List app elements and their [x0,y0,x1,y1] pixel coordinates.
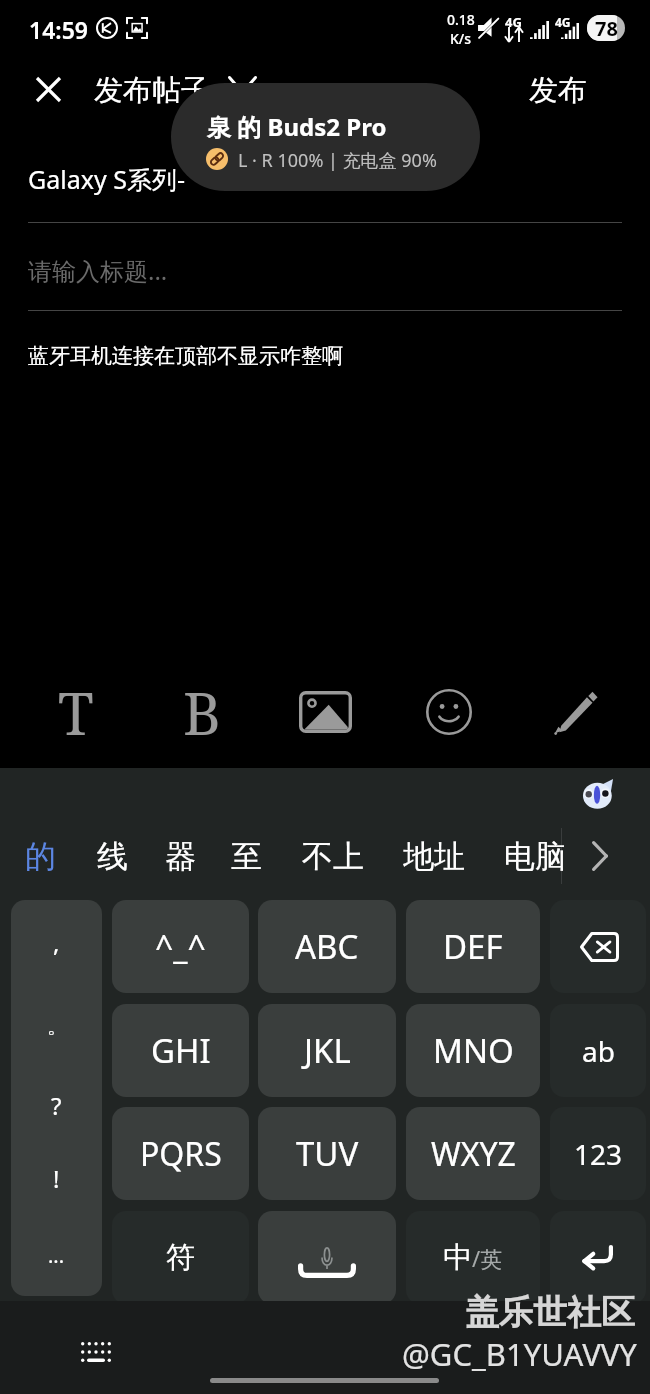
staticText: K/s [450,29,472,48]
button[interactable] [550,1211,646,1304]
staticText: ABC [295,924,359,969]
staticText: ! [53,1162,60,1195]
staticText: 4G [555,14,571,30]
staticText: 发布帖子 [94,72,210,109]
button[interactable] [258,1211,396,1304]
button[interactable] [171,83,480,191]
staticText: ··· [48,1248,65,1275]
staticText: , [53,926,60,959]
button[interactable]: Close [22,63,74,115]
staticText: WXYZ [431,1132,516,1176]
staticText: TUV [296,1131,359,1176]
button[interactable]: Text style [32,668,120,756]
button[interactable]: 器 [146,826,214,886]
button[interactable]: PQRS [112,1107,249,1200]
button[interactable]: ^_^ [112,900,249,993]
staticText: 4G [505,13,522,31]
staticText: 蓝牙耳机连接在顶部不显示咋整啊 [28,343,343,369]
staticText: 123 [574,1135,623,1173]
staticText: 请输入标题... [28,254,168,287]
staticText: MNO [433,1028,514,1073]
staticText: ? [51,1089,62,1122]
staticText: T [58,673,94,752]
staticText: L · R 100% | 充电盒 90% [238,148,437,173]
button[interactable]: 的 [6,826,74,886]
button[interactable]: DEF [406,900,540,993]
button[interactable]: More candidates [572,828,628,884]
button[interactable]: 线 [78,826,146,886]
staticText: 不上 [302,837,364,876]
staticText: ab [582,1032,615,1070]
button[interactable]: Draw [531,668,619,756]
staticText: 0.18 [447,10,475,29]
staticText: 器 [165,837,196,876]
staticText: 符 [166,1239,195,1276]
button[interactable]: Switch input method [74,1330,118,1374]
button[interactable]: TUV [258,1107,396,1200]
staticText: 78 [595,15,618,41]
staticText: 中 [443,1239,472,1276]
staticText: 线 [97,837,128,876]
staticText: JKL [304,1028,351,1073]
button[interactable]: 不上 [299,826,367,886]
staticText: @GC_B1YUAVVY [402,1333,637,1375]
staticText: 至 [231,837,262,876]
staticText: 电脑 [504,837,566,876]
button[interactable]: JKL [258,1004,396,1097]
button[interactable]: Input method logo [578,777,618,817]
button[interactable]: WXYZ [406,1107,540,1200]
staticText: B [183,673,221,752]
button[interactable]: ABC [258,900,396,993]
button[interactable]: GHI [112,1004,249,1097]
button[interactable]: 至 [212,826,280,886]
button[interactable]: 发布 [518,68,598,112]
button[interactable] [550,900,646,993]
button[interactable]: 电脑 [501,826,569,886]
staticText: GHI [151,1028,211,1073]
button[interactable]: Insert image [281,668,369,756]
staticText: 的 [25,837,56,876]
button[interactable]: 123 [550,1107,646,1200]
staticText: DEF [443,924,503,969]
button[interactable]: , [11,900,102,1296]
staticText: 发布 [529,72,587,109]
button[interactable]: Bold [158,668,246,756]
staticText: 14:59 [29,14,88,45]
staticText: 盖乐世社区 [465,1291,635,1334]
button[interactable]: 符 [112,1211,249,1304]
button[interactable]: MNO [406,1004,540,1097]
staticText: ^_^ [155,925,206,969]
button[interactable]: 中 [406,1211,540,1304]
staticText: /英 [472,1243,503,1273]
staticText: 地址 [403,837,465,876]
staticText: PQRS [140,1132,222,1176]
button[interactable]: 发布帖子 [94,68,269,112]
staticText: Galaxy S系列- [28,162,185,196]
staticText: 。 [47,1014,67,1039]
staticText: 泉 的 Buds2 Pro [207,110,387,143]
button[interactable]: 地址 [400,826,468,886]
button[interactable]: Insert emoji [405,668,493,756]
button[interactable]: ab [550,1004,646,1097]
